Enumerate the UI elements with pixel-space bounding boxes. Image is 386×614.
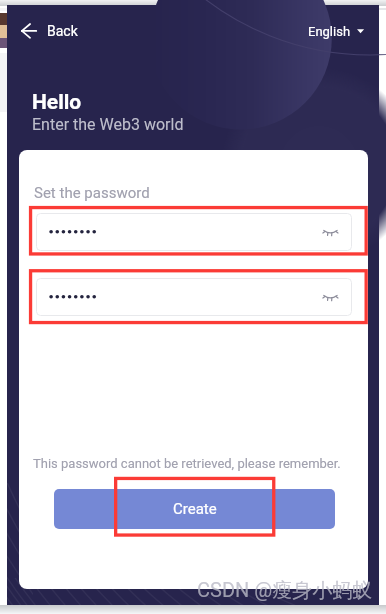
staticText: Hello [32,90,82,115]
staticText: Create [173,500,217,518]
staticText: Set the password [34,184,150,202]
button[interactable]: English [305,17,369,55]
staticText: CSDN @瘦身小蚂蚁 [197,578,373,603]
other: Back [15,17,91,55]
staticText: Enter the Web3 world [32,115,184,134]
button[interactable] [36,278,352,316]
staticText: English [308,24,351,39]
staticText: This password cannot be retrieved, pleas… [33,456,341,471]
button[interactable]: Create [54,489,335,529]
button[interactable]: Back [15,17,91,55]
button[interactable] [36,213,352,251]
staticText: Back [47,23,78,39]
